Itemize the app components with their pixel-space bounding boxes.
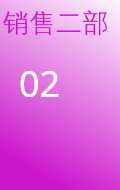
staticText: 销售二部 [3,7,120,40]
staticText: 02 [19,59,61,108]
